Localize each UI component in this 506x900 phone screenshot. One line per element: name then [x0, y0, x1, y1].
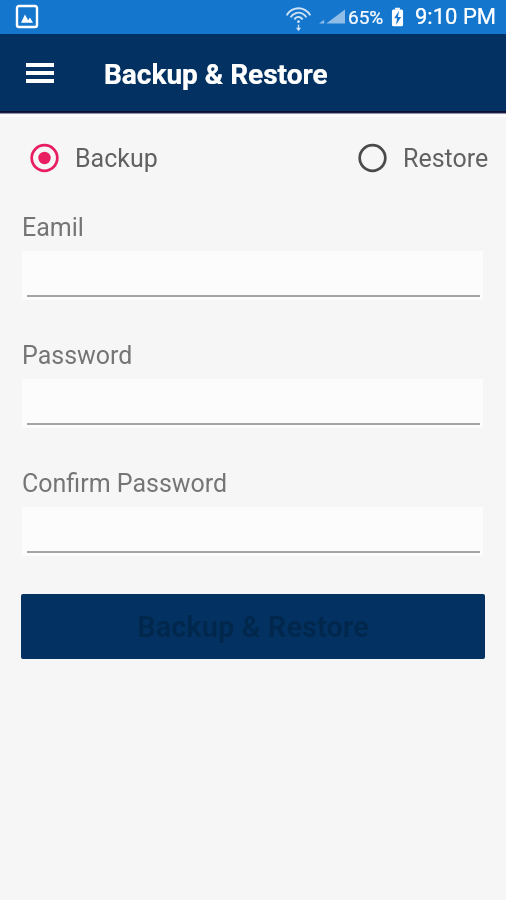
button[interactable]: Backup	[26, 141, 158, 175]
staticText: Backup & Restore	[137, 610, 369, 644]
button[interactable]: Open navigation drawer	[12, 45, 68, 101]
button[interactable]: Restore	[354, 141, 489, 175]
button[interactable]: Password input field	[22, 379, 483, 428]
button[interactable]: Confirm Password input field	[22, 507, 483, 556]
button[interactable]: Backup & Restore	[21, 594, 485, 659]
staticText: Backup & Restore	[104, 58, 328, 91]
staticText: 9:10 PM	[415, 4, 496, 30]
staticText: 65%	[348, 6, 384, 28]
staticText: Backup	[75, 144, 158, 173]
staticText: Eamil	[22, 213, 84, 242]
staticText: Restore	[403, 144, 489, 173]
staticText: Confirm Password	[22, 469, 228, 498]
button[interactable]: Eamil input field	[22, 251, 483, 300]
staticText: Password	[22, 341, 133, 370]
